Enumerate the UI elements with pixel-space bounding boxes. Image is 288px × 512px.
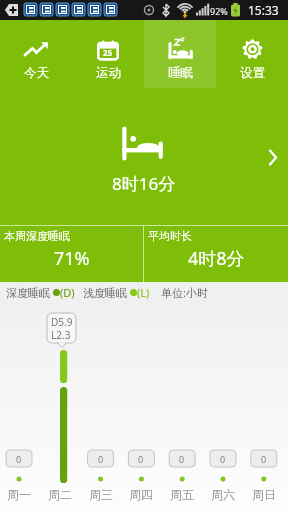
staticText: L2.3 — [51, 328, 71, 342]
button[interactable]: 周日 — [252, 487, 276, 502]
staticText: 0 — [261, 453, 267, 465]
button[interactable]: 0 — [169, 450, 195, 467]
button[interactable]: 0 — [210, 450, 236, 467]
button[interactable]: 0 — [128, 450, 154, 467]
button[interactable]: 25 — [72, 20, 144, 88]
staticText: 运动 — [96, 65, 121, 81]
staticText: 8时16分 — [112, 172, 176, 195]
button[interactable]: 设置 — [216, 20, 288, 88]
button[interactable]: 周五 — [170, 487, 194, 502]
staticText: 15:33 — [248, 2, 279, 18]
button[interactable]: 周六 — [211, 487, 235, 502]
staticText: 单位:小时 — [161, 285, 208, 300]
button[interactable]: 8时16分 — [0, 88, 288, 225]
button[interactable]: 今天 — [0, 20, 72, 88]
staticText: (L) — [137, 285, 150, 300]
staticText: 4时8分 — [188, 246, 245, 271]
staticText: 深度睡眠 — [6, 285, 53, 300]
staticText: 浅度睡眠 — [83, 285, 130, 300]
staticText: 0 — [220, 453, 226, 465]
button[interactable]: 0 — [6, 450, 32, 467]
staticText: D5.9 — [51, 315, 73, 329]
staticText: 0 — [98, 453, 104, 465]
staticText: 92% — [210, 5, 228, 17]
staticText: 0 — [16, 453, 22, 465]
staticText: 25 — [103, 47, 113, 58]
staticText: 本周深度睡眠 — [4, 229, 70, 243]
staticText: (D) — [60, 285, 75, 300]
button[interactable]: 睡眠 — [144, 20, 216, 88]
button[interactable]: 周二 — [48, 487, 72, 502]
button[interactable]: 本周深度睡眠 — [0, 226, 143, 282]
staticText: 设置 — [240, 65, 265, 81]
staticText: 71% — [54, 246, 90, 271]
staticText: 0 — [138, 453, 144, 465]
button[interactable]: 0 — [251, 450, 277, 467]
staticText: 平均时长 — [148, 229, 192, 243]
staticText: 睡眠 — [168, 65, 193, 81]
staticText: 0 — [179, 453, 185, 465]
staticText: 今天 — [24, 65, 49, 81]
button[interactable]: 平均时长 — [144, 226, 288, 282]
button[interactable]: 周三 — [89, 487, 113, 502]
button[interactable]: 周四 — [129, 487, 153, 502]
button[interactable]: 周一 — [7, 487, 31, 502]
button[interactable]: 0 — [88, 450, 114, 467]
